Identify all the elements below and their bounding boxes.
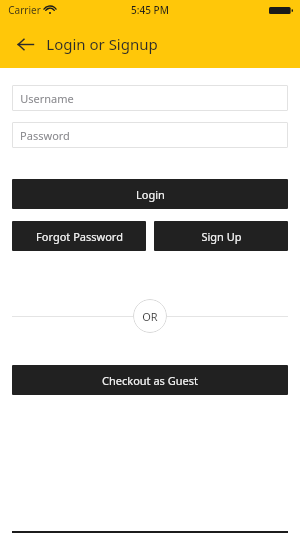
button[interactable]: Login (12, 179, 288, 209)
staticText: 5:45 PM (131, 3, 169, 17)
staticText: Sign Up (201, 229, 242, 244)
staticText: Forgot Password (36, 229, 123, 244)
staticText: OR (142, 309, 158, 324)
staticText: Login (136, 187, 165, 202)
staticText: Password (20, 128, 70, 143)
staticText: Checkout as Guest (102, 373, 198, 388)
staticText: Login or Signup (46, 34, 158, 54)
button[interactable]: Forgot Password (12, 221, 146, 251)
button[interactable]: Back (10, 29, 40, 59)
button[interactable]: Sign Up (154, 221, 288, 251)
button[interactable]: Password (12, 122, 288, 148)
button[interactable]: Checkout as Guest (12, 365, 288, 395)
staticText: Username (20, 91, 74, 106)
button[interactable]: Username (12, 85, 288, 111)
staticText: Carrier (8, 3, 41, 17)
